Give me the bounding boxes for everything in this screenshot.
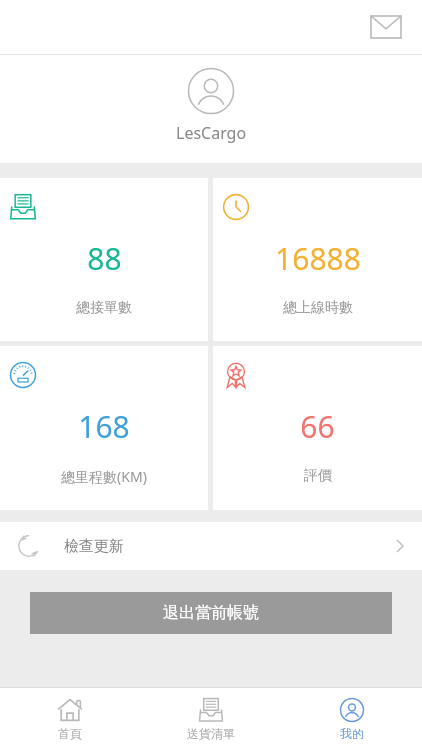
staticText: 首頁 (58, 726, 82, 741)
staticText: 66 (300, 406, 335, 447)
staticText: 16888 (275, 238, 361, 279)
staticText: 檢查更新 (64, 537, 124, 556)
staticText: 送貨清單 (187, 726, 235, 741)
button[interactable]: 16888 (213, 178, 422, 341)
button[interactable]: 66 (213, 346, 422, 510)
staticText: 總里程數(KM) (61, 467, 147, 486)
staticText: 評價 (304, 467, 332, 485)
button[interactable]: 首頁 (0, 688, 140, 750)
staticText: 退出當前帳號 (163, 603, 259, 623)
button[interactable]: 88 (0, 178, 208, 341)
staticText: 88 (87, 238, 122, 279)
button[interactable]: 我的 (281, 688, 422, 750)
button[interactable]: 檢查更新 (0, 522, 422, 570)
button[interactable]: 168 (0, 346, 208, 510)
staticText: 總上線時數 (283, 299, 353, 317)
staticText: 我的 (340, 726, 364, 741)
staticText: LesCargo (176, 122, 247, 144)
staticText: 總接單數 (76, 299, 132, 317)
button[interactable]: 送貨清單 (140, 688, 281, 750)
button[interactable]: 退出當前帳號 (30, 592, 392, 634)
staticText: 168 (78, 406, 130, 447)
button[interactable]: Messages (364, 5, 408, 49)
